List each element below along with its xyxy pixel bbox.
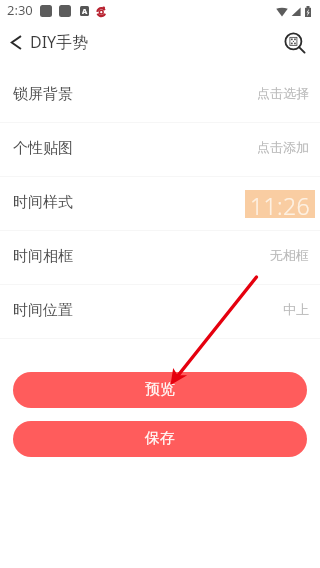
button[interactable]: 时间位置 [0,285,320,338]
button[interactable]: Scan QR code [274,22,318,65]
staticText: 无相框 [270,247,309,263]
staticText: 中上 [283,301,309,317]
button[interactable]: 时间相框 [0,231,320,284]
staticText: A [82,6,88,16]
button[interactable]: 个性贴图 [0,123,320,176]
staticText: 点击选择 [257,85,309,101]
staticText: 11:26 [250,190,311,218]
staticText: 时间位置 [13,301,73,320]
staticText: 预览 [145,380,175,399]
button[interactable]: 保存 [13,421,307,457]
staticText: 个性贴图 [13,139,73,158]
button[interactable]: 时间样式 [0,177,320,230]
staticText: DIY手势 [30,31,89,53]
staticText: 2:30 [7,1,33,19]
staticText: 锁屏背景 [13,85,73,104]
button[interactable]: 锁屏背景 [0,69,320,122]
button[interactable]: 预览 [13,372,307,408]
button[interactable]: Back [0,22,32,65]
staticText: 时间相框 [13,247,73,266]
staticText: 点击添加 [257,139,309,155]
staticText: 保存 [145,429,175,448]
staticText: 时间样式 [13,193,73,212]
